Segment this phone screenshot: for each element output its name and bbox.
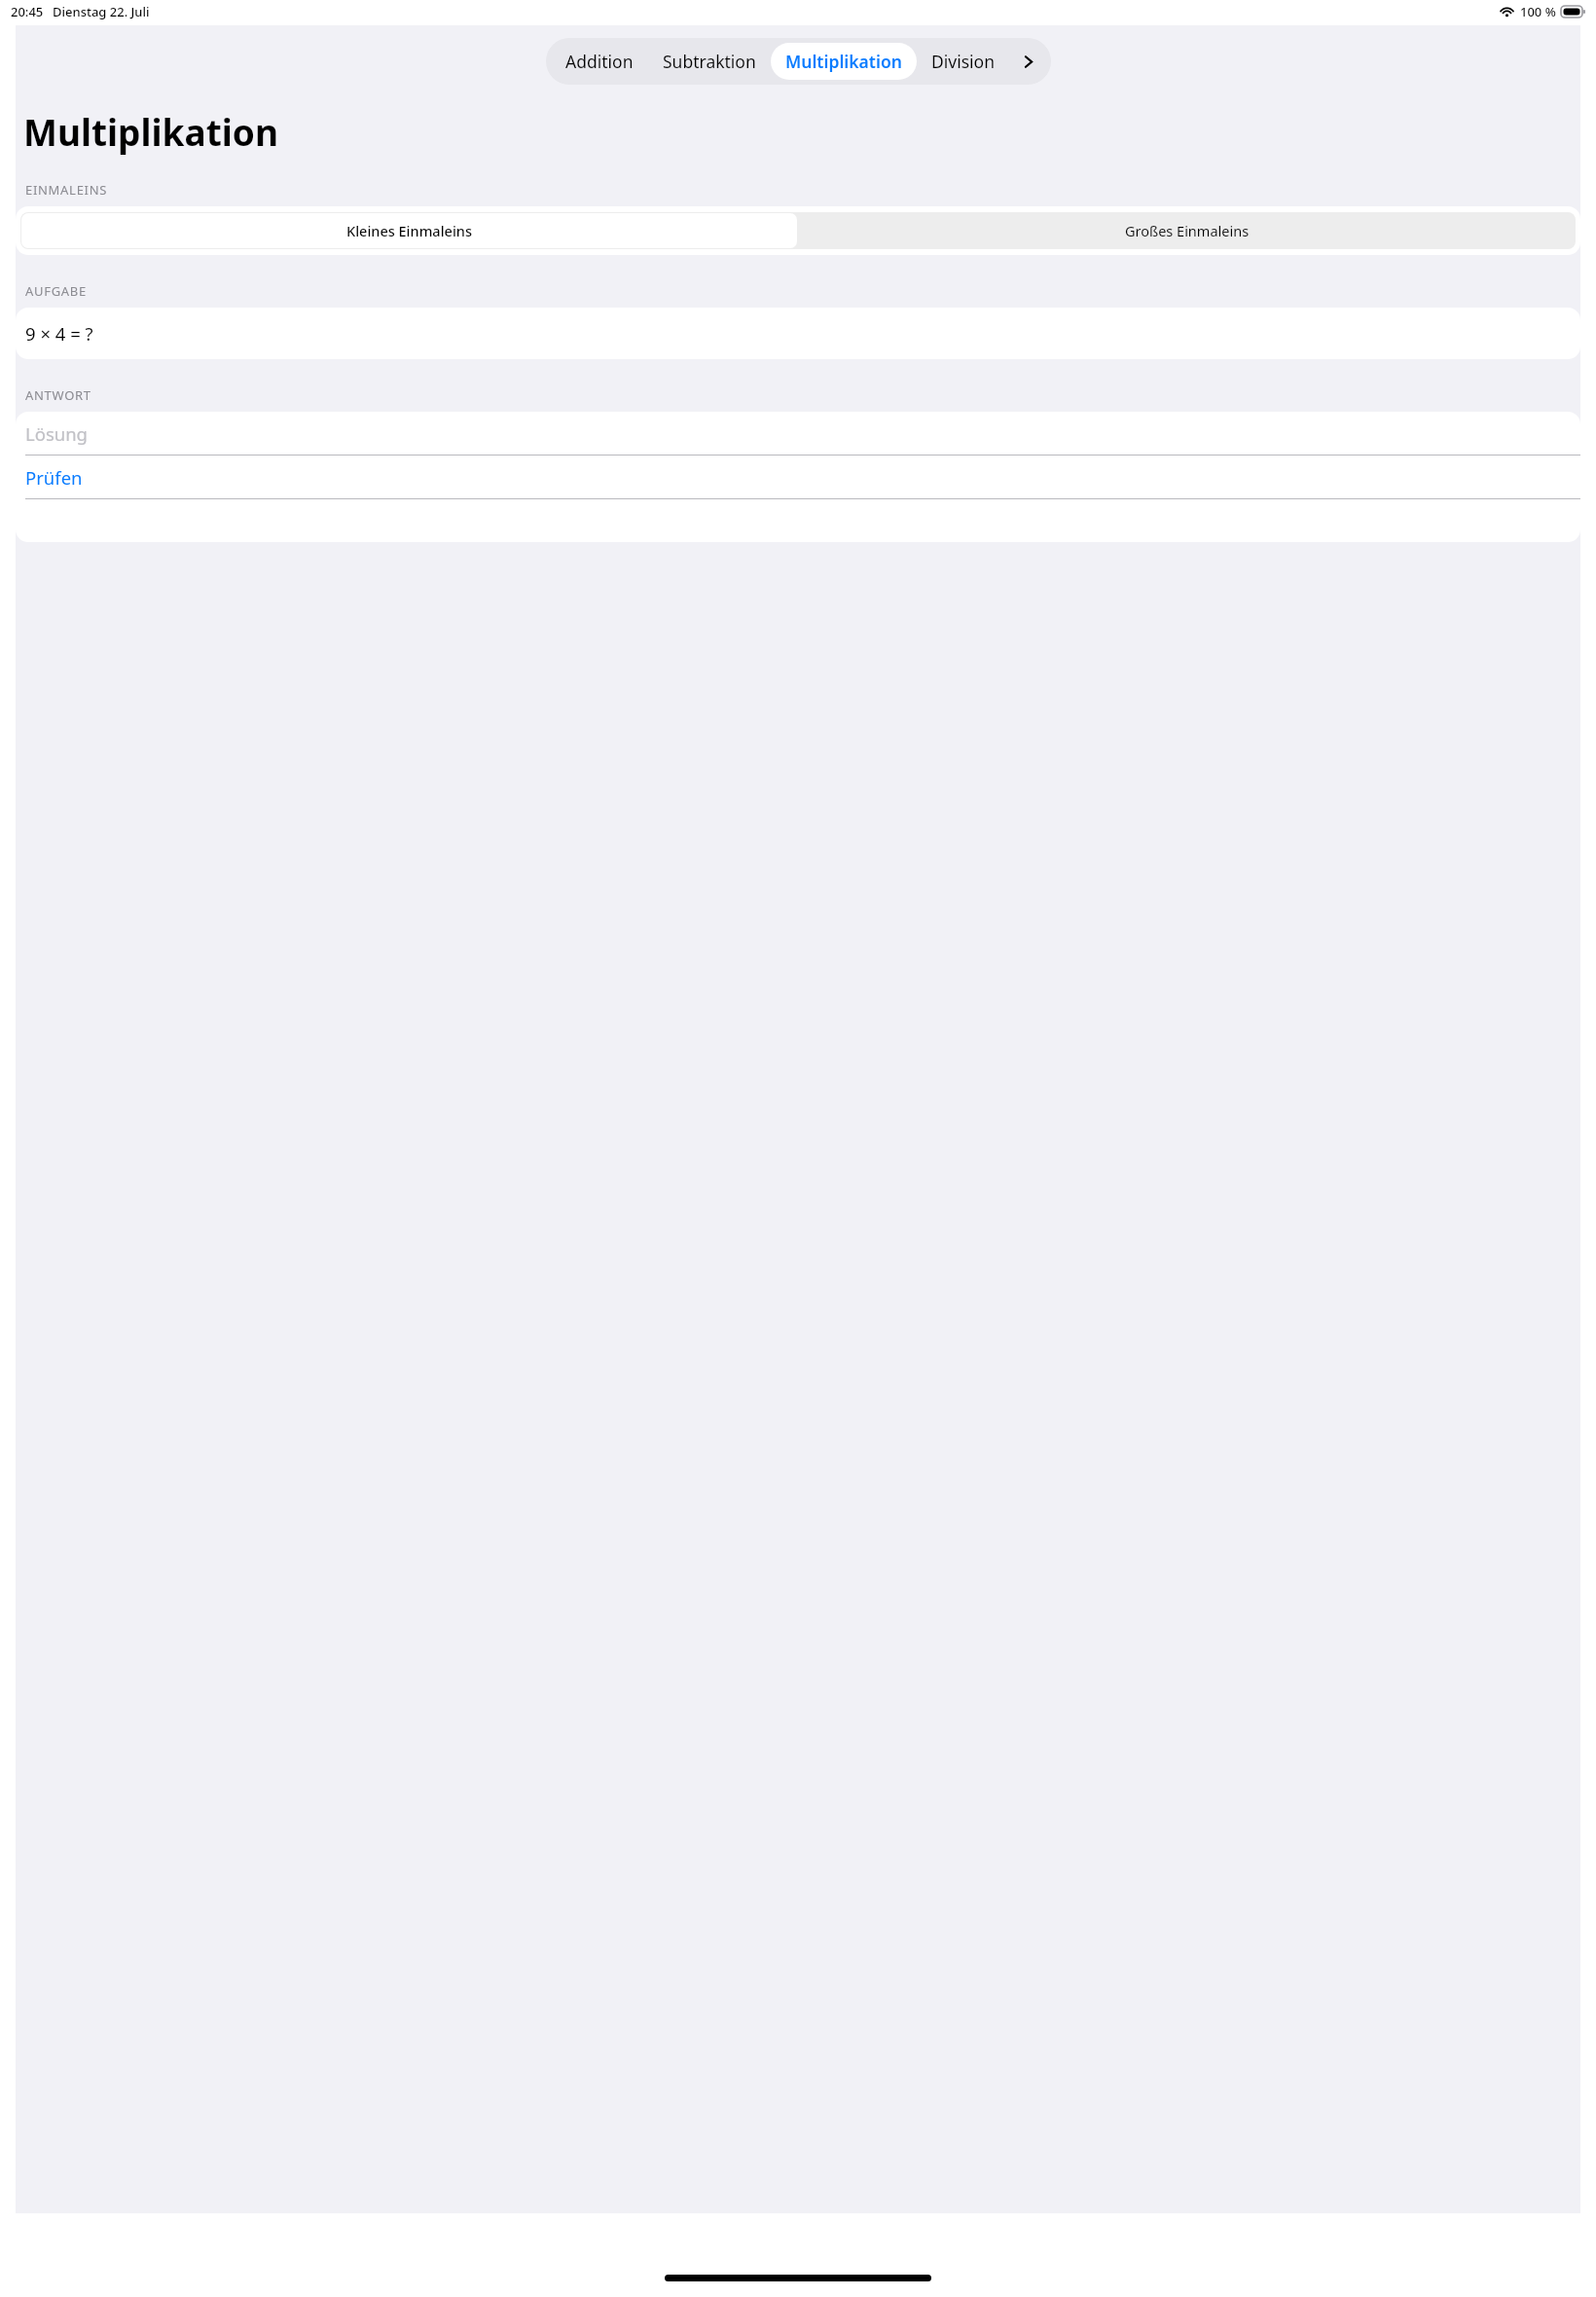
staticText: Multiplikation <box>785 50 902 73</box>
staticText: Subtraktion <box>663 50 756 73</box>
staticText: Kleines Einmaleins <box>346 221 472 240</box>
button[interactable]: Division <box>917 43 1009 80</box>
button[interactable]: Weitere Rechenarten <box>1009 43 1046 80</box>
staticText: 20:45 <box>11 3 44 20</box>
button[interactable]: Lösung <box>16 412 1580 455</box>
other: WLAN <box>1499 6 1515 18</box>
staticText: Großes Einmaleins <box>1125 221 1250 240</box>
staticText: Lösung <box>25 421 88 446</box>
button[interactable]: Kleines Einmaleins <box>21 213 797 248</box>
other: Batterie 100 % <box>1561 6 1585 18</box>
staticText: 100 % <box>1520 3 1556 20</box>
staticText: Division <box>931 50 995 73</box>
staticText: 9 × 4 = ? <box>25 321 93 346</box>
button[interactable]: Prüfen <box>16 456 1580 498</box>
staticText: Prüfen <box>25 465 83 490</box>
button[interactable]: Großes Einmaleins <box>798 212 1576 249</box>
staticText: Addition <box>565 50 634 73</box>
button[interactable]: Multiplikation <box>771 43 917 80</box>
staticText: ANTWORT <box>25 386 91 404</box>
button[interactable]: Addition <box>551 43 648 80</box>
button[interactable]: Subtraktion <box>648 43 771 80</box>
staticText: AUFGABE <box>25 282 87 300</box>
staticText: Multiplikation <box>23 107 278 156</box>
staticText: Dienstag 22. Juli <box>53 3 150 20</box>
button[interactable]: 9 × 4 = ? <box>16 308 1580 359</box>
staticText: EINMALEINS <box>25 181 108 199</box>
